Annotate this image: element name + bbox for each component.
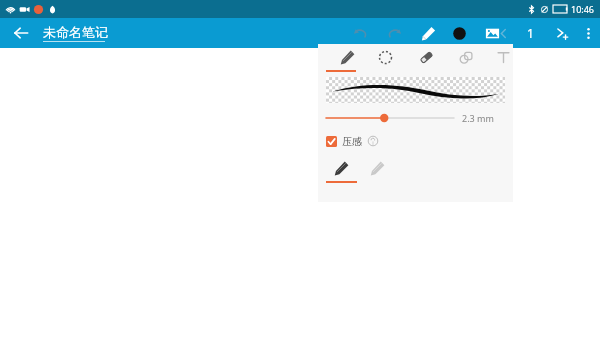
staticText: 1 xyxy=(527,25,534,41)
button[interactable]: Redo xyxy=(383,18,405,48)
button[interactable]: More options xyxy=(577,18,599,48)
button[interactable]: Shapes xyxy=(453,44,479,70)
button[interactable]: Undo xyxy=(349,18,371,48)
button[interactable]: Colour xyxy=(448,18,470,48)
button[interactable]: Eraser xyxy=(413,44,439,70)
button[interactable]: Marker preset xyxy=(366,157,388,179)
button[interactable]: Lasso select xyxy=(372,44,398,70)
button[interactable]: Insert image xyxy=(481,18,503,48)
button[interactable]: 压感 xyxy=(326,132,379,150)
button[interactable]: 1 xyxy=(519,18,541,48)
button[interactable]: Next page xyxy=(550,18,572,48)
staticText: 未命名笔记 xyxy=(43,24,108,40)
button[interactable]: Pen tool xyxy=(334,44,360,70)
staticText: 压感 xyxy=(342,135,362,148)
button[interactable]: Help xyxy=(367,135,379,147)
button[interactable]: Previous page xyxy=(492,18,514,48)
button[interactable]: Pencil preset xyxy=(330,157,352,179)
button[interactable]: Text xyxy=(490,44,516,70)
button[interactable]: 未命名笔记 xyxy=(42,24,109,42)
staticText: 10:46 xyxy=(571,3,595,15)
button[interactable]: Back xyxy=(8,20,34,46)
button[interactable]: Stroke size xyxy=(326,110,454,126)
button[interactable]: Pen xyxy=(417,18,439,48)
staticText: 2.3 mm xyxy=(462,112,505,124)
